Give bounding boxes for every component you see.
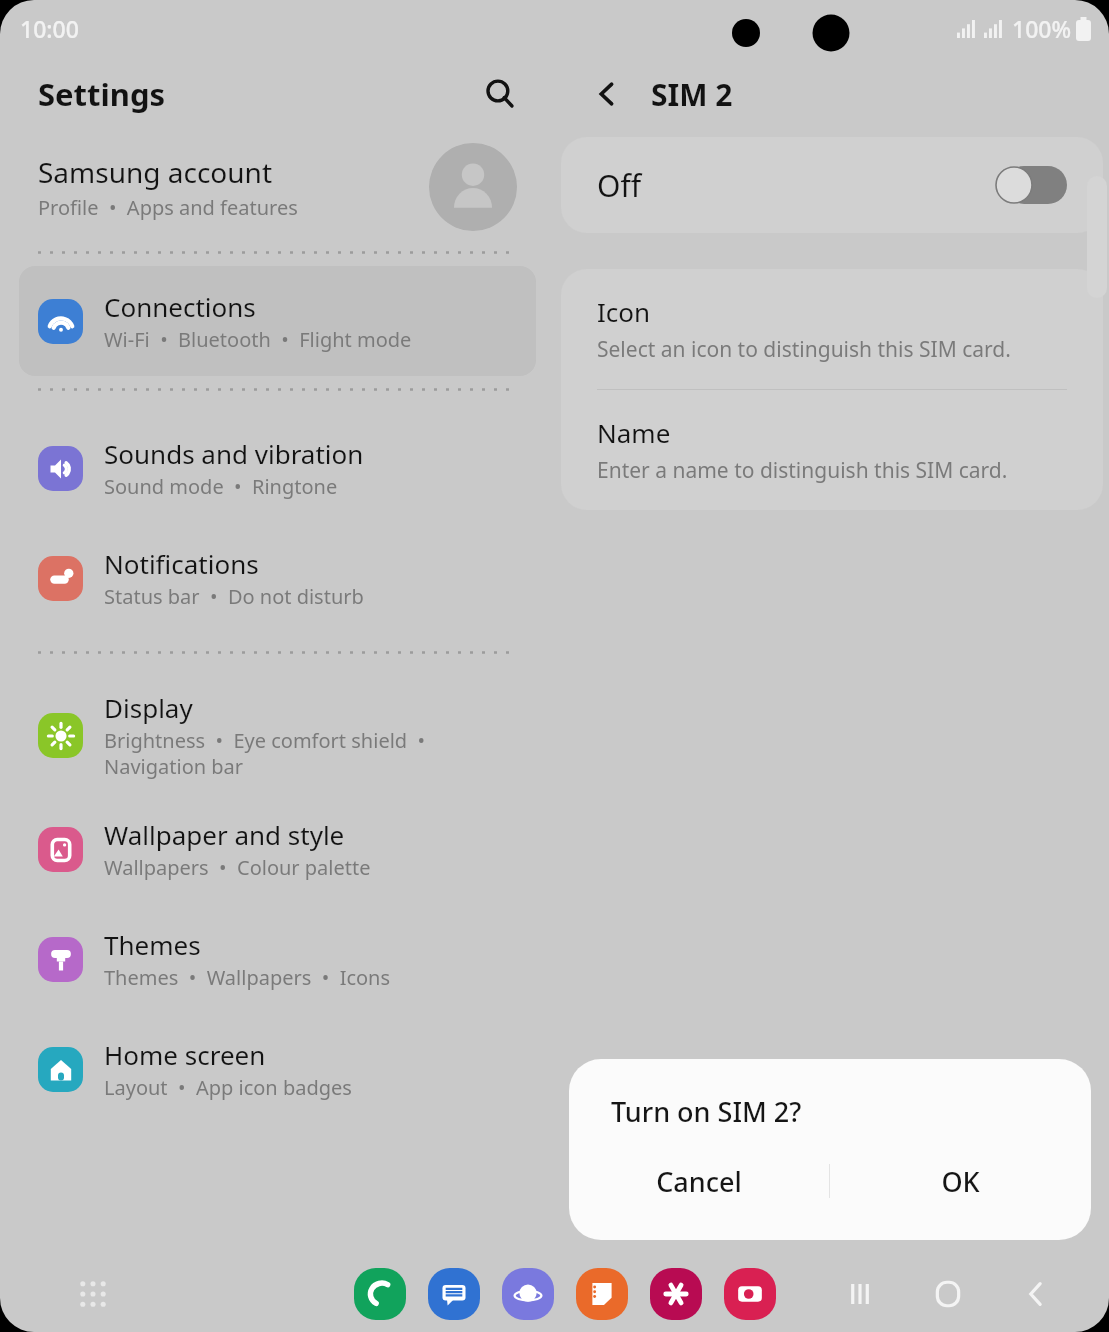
staticText: Sounds and vibration bbox=[104, 436, 364, 471]
staticText: Home screen bbox=[104, 1037, 266, 1072]
staticText: Icon bbox=[597, 294, 651, 329]
staticText: Turn on SIM 2? bbox=[611, 1093, 802, 1130]
staticText: SIM 2 bbox=[651, 74, 733, 115]
staticText: Connections bbox=[104, 289, 256, 324]
staticText: Enter a name to distinguish this SIM car… bbox=[597, 456, 1008, 485]
staticText: 10:00 bbox=[20, 13, 79, 44]
button[interactable]: Sounds and vibration bbox=[19, 413, 536, 523]
staticText: Brightness • Eye comfort shield • Naviga… bbox=[104, 727, 426, 780]
button[interactable]: Connections bbox=[19, 266, 536, 376]
button[interactable]: Home bbox=[919, 1265, 977, 1323]
button[interactable]: Notes bbox=[576, 1268, 628, 1320]
button[interactable]: Name bbox=[561, 390, 1103, 510]
button[interactable]: Back bbox=[581, 68, 633, 120]
staticText: Profile • Apps and features bbox=[38, 194, 298, 221]
button[interactable]: Internet bbox=[502, 1268, 554, 1320]
button[interactable]: Wallpaper and style bbox=[19, 794, 536, 904]
button[interactable]: Search bbox=[474, 68, 526, 120]
button[interactable]: Camera bbox=[724, 1268, 776, 1320]
staticText: Wallpapers • Colour palette bbox=[104, 854, 371, 881]
button[interactable]: Notifications bbox=[19, 523, 536, 633]
staticText: Display bbox=[104, 690, 193, 725]
button[interactable]: Display bbox=[19, 676, 536, 794]
button[interactable]: Home screen bbox=[19, 1014, 536, 1124]
staticText: Wi-Fi • Bluetooth • Flight mode bbox=[104, 326, 412, 353]
button[interactable]: Themes bbox=[19, 904, 536, 1014]
staticText: Themes bbox=[104, 927, 201, 962]
staticText: Notifications bbox=[104, 546, 259, 581]
button[interactable]: Cancel bbox=[569, 1148, 829, 1214]
button[interactable]: Apps bbox=[70, 1271, 116, 1317]
staticText: Wallpaper and style bbox=[104, 817, 345, 852]
button[interactable]: Icon bbox=[561, 269, 1103, 389]
staticText: Cancel bbox=[656, 1163, 742, 1200]
staticText: Off bbox=[597, 165, 642, 206]
button[interactable]: Messages bbox=[428, 1268, 480, 1320]
staticText: 100% bbox=[1012, 13, 1072, 44]
staticText: Select an icon to distinguish this SIM c… bbox=[597, 335, 1011, 364]
button[interactable]: Samsung account bbox=[0, 131, 555, 243]
button[interactable]: Gallery bbox=[650, 1268, 702, 1320]
button[interactable]: Phone bbox=[354, 1268, 406, 1320]
button[interactable]: Recents bbox=[831, 1265, 889, 1323]
button[interactable]: Off bbox=[561, 137, 1103, 233]
button[interactable]: Back bbox=[1007, 1265, 1065, 1323]
staticText: Name bbox=[597, 415, 671, 450]
staticText: Sound mode • Ringtone bbox=[104, 473, 338, 500]
button[interactable]: OK bbox=[830, 1148, 1091, 1214]
staticText: Samsung account bbox=[38, 153, 273, 191]
staticText: Themes • Wallpapers • Icons bbox=[104, 964, 391, 991]
staticText: Settings bbox=[38, 73, 166, 115]
staticText: Layout • App icon badges bbox=[104, 1074, 352, 1101]
staticText: OK bbox=[941, 1163, 980, 1200]
staticText: Status bar • Do not disturb bbox=[104, 583, 364, 610]
